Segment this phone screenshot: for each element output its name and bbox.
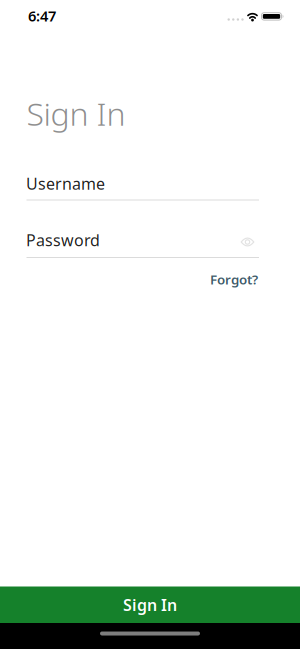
button[interactable]: Show password — [240, 235, 254, 248]
staticText: Sign In — [26, 92, 125, 134]
staticText: Username — [26, 173, 105, 194]
button[interactable]: Sign In — [0, 586, 300, 623]
staticText: Forgot? — [210, 270, 258, 288]
staticText: Sign In — [123, 594, 177, 615]
staticText: 6:47 — [28, 6, 56, 25]
button[interactable]: Forgot? — [210, 270, 258, 288]
staticText: Password — [26, 229, 100, 251]
